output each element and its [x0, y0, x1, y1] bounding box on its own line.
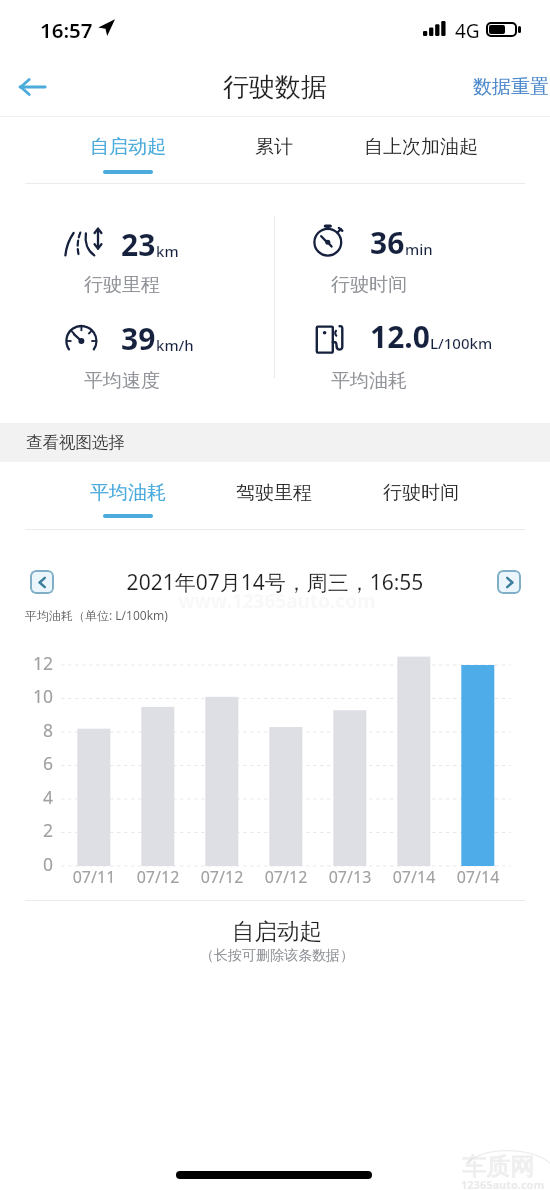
staticText: （长按可删除该条数据） [2, 947, 550, 965]
staticText: 07/13 [316, 866, 384, 888]
staticText: 07/12 [252, 866, 320, 888]
staticText: 4G [455, 18, 480, 44]
staticText: L/100km [430, 333, 493, 353]
staticText: 行驶时间 [331, 273, 407, 297]
staticText: 2 [22, 818, 53, 842]
staticText: 39 [121, 318, 156, 359]
staticText: 行驶里程 [84, 273, 160, 297]
staticText: 07/14 [380, 866, 448, 888]
button[interactable]: Previous [30, 570, 54, 594]
staticText: 累计 [255, 135, 293, 159]
staticText: 2021年07月14号，周三，16:55 [0, 568, 550, 597]
staticText: 行驶数据 [223, 71, 327, 104]
staticText: 自上次加油起 [364, 135, 478, 159]
staticText: 4 [22, 785, 53, 809]
staticText: 0 [22, 852, 53, 876]
button[interactable]: 自启动起 [78, 115, 178, 184]
staticText: 23 [121, 224, 156, 265]
button[interactable]: 行驶时间 [366, 462, 476, 530]
button[interactable]: Back [8, 63, 56, 111]
staticText: 查看视图选择 [26, 432, 125, 453]
staticText: 平均速度 [84, 369, 160, 393]
staticText: 12.0 [370, 316, 430, 357]
staticText: 07/14 [444, 866, 512, 888]
staticText: 数据重置 [473, 75, 549, 99]
button[interactable]: 自上次加油起 [356, 115, 486, 184]
button[interactable]: Next [497, 570, 521, 594]
staticText: km/h [156, 335, 194, 355]
staticText: 驾驶里程 [236, 481, 312, 505]
staticText: 07/12 [188, 866, 256, 888]
staticText: 平均油耗 [331, 369, 407, 393]
button[interactable]: 数据重置 [473, 75, 550, 99]
staticText: 10 [22, 684, 53, 708]
staticText: 自启动起 [2, 917, 550, 945]
staticText: 36 [370, 222, 405, 263]
staticText: 12365auto.com [461, 1177, 545, 1190]
staticText: 07/12 [124, 866, 192, 888]
staticText: 07/11 [60, 866, 128, 888]
button[interactable]: 平均油耗 [73, 462, 183, 530]
staticText: 8 [22, 718, 53, 742]
staticText: 12 [22, 651, 53, 675]
staticText: 6 [22, 751, 53, 775]
staticText: 16:57 [40, 16, 93, 44]
staticText: 行驶时间 [383, 481, 459, 505]
staticText: 平均油耗 [90, 481, 166, 505]
staticText: min [405, 239, 433, 259]
staticText: km [156, 241, 179, 261]
button[interactable]: 累计 [239, 115, 309, 184]
staticText: 平均油耗（单位: L/100km) [25, 607, 168, 623]
button[interactable]: 驾驶里程 [219, 462, 329, 530]
staticText: www.12365auto.com [2, 588, 550, 614]
staticText: 车质网 [462, 1152, 534, 1182]
staticText: 自启动起 [90, 135, 166, 159]
